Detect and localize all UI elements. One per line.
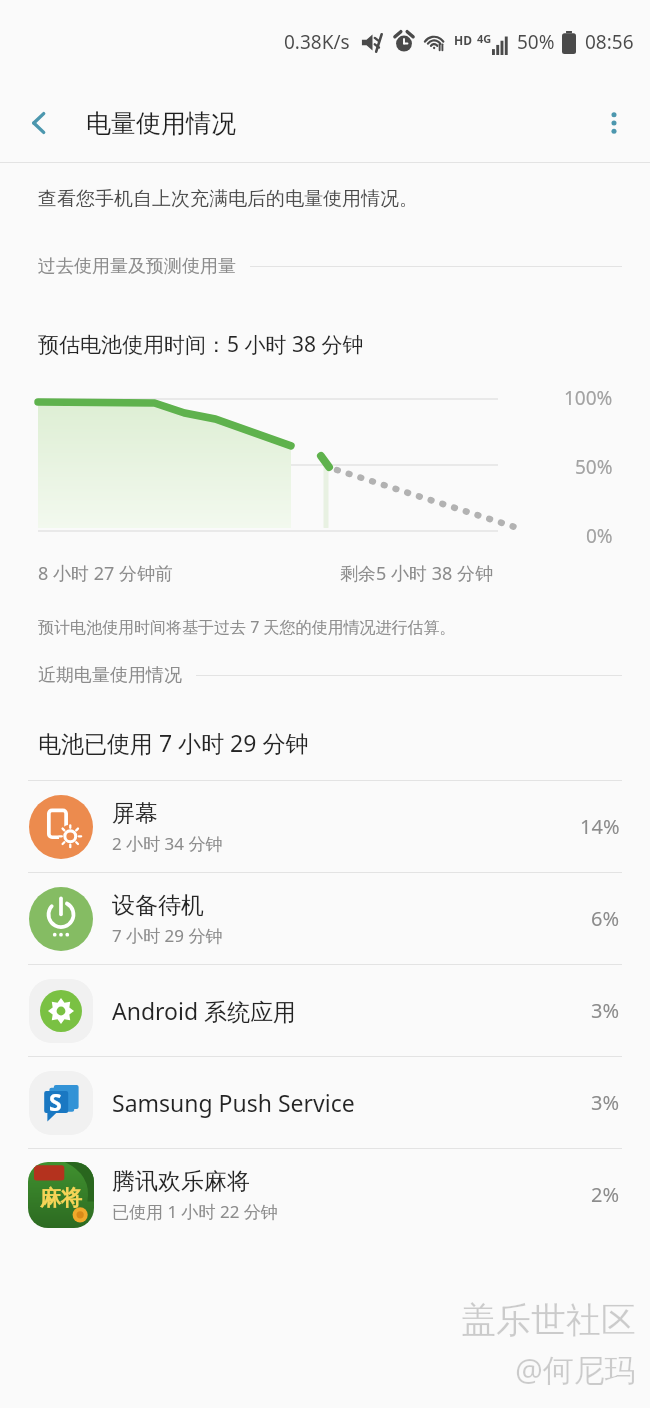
staticText: 2% (591, 1181, 620, 1208)
staticText: 电池已使用 7 小时 29 分钟 (38, 727, 309, 758)
button[interactable]: S (0, 1057, 650, 1148)
staticText: 0.38K/s (284, 29, 350, 55)
staticText: 预估电池使用时间：5 小时 38 分钟 (38, 330, 364, 359)
staticText: 100% (564, 385, 613, 411)
button[interactable]: Back (0, 84, 78, 162)
staticText: Android 系统应用 (112, 995, 297, 1026)
staticText: 50% (517, 29, 555, 55)
staticText: 屏幕 (112, 799, 158, 828)
staticText: HD (454, 32, 472, 48)
staticText: 剩余5 小时 38 分钟 (340, 561, 493, 586)
staticText: 14% (580, 813, 620, 840)
staticText: 08:56 (585, 29, 634, 55)
button[interactable]: 麻将 (0, 1149, 650, 1240)
staticText: 预计电池使用时间将基于过去 7 天您的使用情况进行估算。 (38, 616, 456, 638)
staticText: 7 小时 29 分钟 (112, 924, 223, 947)
staticText: 已使用 1 小时 22 分钟 (112, 1200, 278, 1223)
staticText: 过去使用量及预测使用量 (38, 255, 236, 278)
staticText: 近期电量使用情况 (38, 664, 182, 687)
staticText: 麻将 (40, 1185, 82, 1211)
button[interactable]: More options (578, 84, 650, 162)
staticText: 查看您手机自上次充满电后的电量使用情况。 (38, 187, 418, 211)
staticText: 3% (591, 1089, 620, 1116)
button[interactable]: Android 系统应用 (0, 965, 650, 1056)
staticText: 盖乐世社区 (461, 1298, 636, 1342)
button[interactable]: 设备待机 (0, 873, 650, 964)
staticText: 50% (575, 454, 613, 480)
staticText: 2 小时 34 分钟 (112, 832, 223, 855)
staticText: 腾讯欢乐麻将 (112, 1167, 250, 1196)
staticText: 0% (586, 523, 613, 549)
staticText: 电量使用情况 (86, 108, 236, 139)
staticText: 6% (591, 905, 620, 932)
button[interactable]: 屏幕 (0, 781, 650, 872)
staticText: 设备待机 (112, 891, 204, 920)
staticText: Samsung Push Service (112, 1087, 355, 1118)
staticText: 8 小时 27 分钟前 (38, 561, 173, 586)
staticText: 4G (477, 31, 492, 46)
staticText: @何尼玛 (515, 1348, 636, 1390)
staticText: S (49, 1086, 62, 1117)
staticText: 3% (591, 997, 620, 1024)
